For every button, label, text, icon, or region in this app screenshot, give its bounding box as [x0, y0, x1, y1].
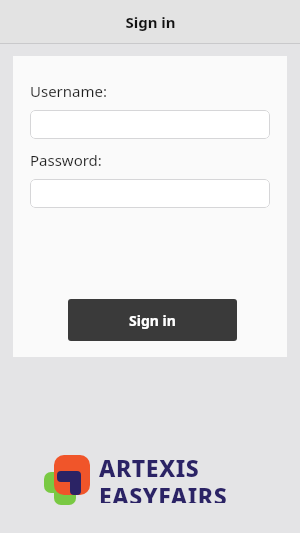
staticText: Sign in	[129, 311, 176, 330]
staticText: EASYFAIRS	[99, 480, 228, 503]
staticText: Password:	[30, 150, 102, 170]
staticText: ARTEXIS	[99, 452, 200, 483]
button[interactable]: Text input field	[30, 179, 270, 208]
staticText: Username:	[30, 81, 107, 101]
staticText: Sign in	[125, 12, 176, 32]
button[interactable]: Text input field	[30, 110, 270, 139]
button[interactable]: Sign in	[68, 299, 237, 341]
